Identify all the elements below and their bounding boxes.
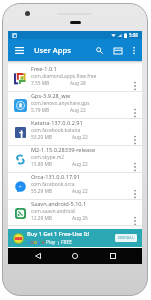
staticText: com.saavn.android <box>31 208 75 215</box>
staticText: INSTALL <box>118 235 135 241</box>
staticText: Aug 22 <box>72 161 88 168</box>
button[interactable]: Buy 1 Get 1 Free-Use It! <box>8 229 142 247</box>
button[interactable]: Item options <box>129 200 142 225</box>
button[interactable]: Open navigation menu <box>8 39 30 61</box>
staticText: Free-1.0.1 <box>31 65 57 73</box>
button[interactable]: Item options <box>129 146 142 172</box>
staticText: com.facebook.katana <box>31 127 81 134</box>
staticText: com.facebook.orca <box>31 181 75 188</box>
button[interactable]: M2-1.15.0.28339-release <box>8 146 142 173</box>
button[interactable]: Free-1.0.1 <box>8 65 142 92</box>
staticText: l <box>40 239 42 246</box>
staticText: Aug 22 <box>70 107 86 114</box>
staticText: o <box>31 239 34 246</box>
button[interactable]: Recent apps <box>105 248 121 264</box>
button[interactable]: Item options <box>129 92 142 118</box>
staticText: o <box>34 239 37 246</box>
button[interactable]: Item options <box>129 173 142 199</box>
staticText: 5:08 <box>129 32 138 38</box>
staticText: Gps-3.9.28_ww <box>31 92 71 100</box>
button[interactable]: Back <box>30 248 46 264</box>
button[interactable]: Item options <box>129 119 142 145</box>
staticText: Saavn.android-5.10.1 <box>31 200 87 208</box>
staticText: g <box>37 239 40 246</box>
staticText: User Apps <box>34 45 71 55</box>
staticText: com.lenovo.anyshare.gps <box>31 100 90 107</box>
button[interactable]: More options <box>126 43 141 58</box>
button[interactable]: Katana-137.0.0.2.91 <box>8 119 142 146</box>
staticText: M2-1.15.0.28339-release <box>31 146 96 154</box>
button[interactable]: Saavn.android-5.10.1 <box>8 200 142 226</box>
staticText: 55.29 MB <box>31 188 52 195</box>
button[interactable]: INSTALL <box>115 234 137 242</box>
button[interactable]: Gps-3.9.28_ww <box>8 92 142 119</box>
staticText: Katana-137.0.0.2.91 <box>31 119 83 127</box>
button[interactable]: Search <box>91 42 108 59</box>
staticText: 7.55 MB <box>31 80 50 87</box>
staticText: Aug 22 <box>72 134 88 141</box>
staticText: 12.29 MB <box>31 215 52 221</box>
staticText: Orca-131.0.0.17.91 <box>31 173 80 181</box>
button[interactable]: Item options <box>129 65 142 91</box>
staticText: G <box>27 239 31 246</box>
staticText: Aug 28 <box>70 80 86 87</box>
staticText: Aug 26 <box>72 215 88 221</box>
staticText: Play <box>46 239 56 246</box>
staticText: FREE <box>61 239 72 246</box>
staticText: Aug 22 <box>72 188 88 195</box>
staticText: com.diamond.apps.flow.free <box>31 73 97 80</box>
staticText: 53.20 MB <box>31 134 52 141</box>
staticText: e <box>42 239 45 246</box>
staticText: com.skype.m2 <box>31 154 65 161</box>
button[interactable]: Orca-131.0.0.17.91 <box>8 173 142 200</box>
staticText: 15.80 MB <box>31 161 52 168</box>
staticText: Buy 1 Get 1 Free-Use It! <box>27 230 90 238</box>
button[interactable]: Home <box>67 248 83 264</box>
staticText: 5.79 MB <box>31 107 50 114</box>
button[interactable]: Switch layout <box>109 42 126 59</box>
